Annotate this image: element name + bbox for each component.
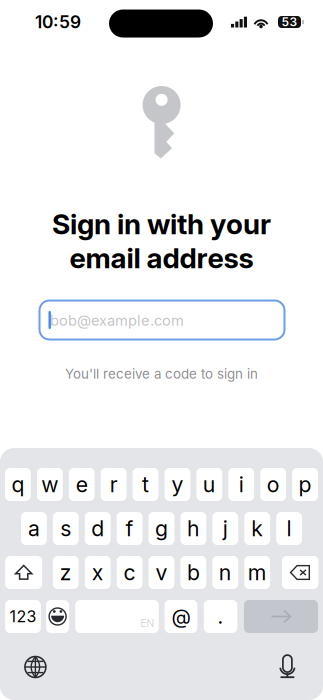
staticText: h xyxy=(187,516,200,541)
button[interactable]: space xyxy=(75,600,159,633)
button[interactable]: s xyxy=(53,512,79,545)
staticText: EN xyxy=(140,616,154,629)
button[interactable]: b xyxy=(180,556,206,589)
button[interactable]: Emoji xyxy=(46,600,69,633)
staticText: s xyxy=(60,516,71,541)
staticText: email address xyxy=(69,241,253,275)
staticText: x xyxy=(92,560,104,585)
staticText: l xyxy=(287,516,292,541)
staticText: 123 xyxy=(9,607,36,626)
button[interactable]: k xyxy=(244,512,270,545)
staticText: z xyxy=(60,560,72,585)
button[interactable]: a xyxy=(21,512,47,545)
staticText: c xyxy=(124,560,136,585)
button[interactable]: u xyxy=(196,468,222,501)
staticText: q xyxy=(11,472,24,497)
button[interactable]: x xyxy=(85,556,111,589)
button[interactable]: h xyxy=(180,512,206,545)
staticText: w xyxy=(41,472,58,497)
staticText: g xyxy=(155,516,168,541)
staticText: v xyxy=(155,560,167,585)
button[interactable]: Shift xyxy=(5,556,42,589)
button[interactable]: d xyxy=(85,512,111,545)
button[interactable]: e xyxy=(69,468,95,501)
staticText: r xyxy=(110,472,118,497)
staticText: b xyxy=(187,560,200,585)
button[interactable]: i xyxy=(228,468,254,501)
staticText: 10:59 xyxy=(35,11,81,32)
button[interactable]: Dictation xyxy=(270,650,304,684)
staticText: t xyxy=(142,472,149,497)
staticText: y xyxy=(171,472,183,497)
staticText: n xyxy=(219,560,232,585)
staticText: m xyxy=(248,560,267,585)
button[interactable]: @ xyxy=(165,600,197,633)
staticText: o xyxy=(267,472,280,497)
button[interactable]: q xyxy=(5,468,31,501)
staticText: u xyxy=(203,472,216,497)
button[interactable]: t xyxy=(133,468,158,501)
button[interactable]: z xyxy=(53,556,79,589)
button[interactable]: o xyxy=(260,468,286,501)
button[interactable]: p xyxy=(292,468,318,501)
button[interactable]: g xyxy=(149,512,174,545)
button[interactable]: l xyxy=(276,512,302,545)
staticText: Sign in with your xyxy=(52,207,271,241)
button[interactable]: f xyxy=(117,512,142,545)
button[interactable]: m xyxy=(244,556,270,589)
staticText: You'll receive a code to sign in xyxy=(65,366,258,382)
staticText: d xyxy=(91,516,104,541)
staticText: a xyxy=(28,516,40,541)
staticText: p xyxy=(298,472,311,497)
staticText: . xyxy=(218,604,224,629)
button[interactable]: . xyxy=(204,600,237,633)
button[interactable]: Return xyxy=(244,600,318,633)
button[interactable]: Next keyboard xyxy=(18,650,52,684)
button[interactable]: y xyxy=(164,468,190,501)
staticText: f xyxy=(126,516,134,541)
button[interactable]: w xyxy=(37,468,63,501)
button[interactable]: j xyxy=(212,512,238,545)
staticText: j xyxy=(223,516,228,541)
staticText: 53 xyxy=(281,15,297,29)
button[interactable]: 123 xyxy=(5,600,41,633)
button[interactable]: r xyxy=(101,468,126,501)
staticText: i xyxy=(239,472,244,497)
staticText: k xyxy=(251,516,263,541)
button[interactable]: n xyxy=(212,556,238,589)
staticText: e xyxy=(76,472,88,497)
button[interactable]: v xyxy=(149,556,174,589)
staticText: @ xyxy=(171,604,190,629)
staticText: bob@example.com xyxy=(50,312,184,329)
button[interactable]: c xyxy=(117,556,142,589)
button[interactable]: Delete xyxy=(282,556,318,589)
